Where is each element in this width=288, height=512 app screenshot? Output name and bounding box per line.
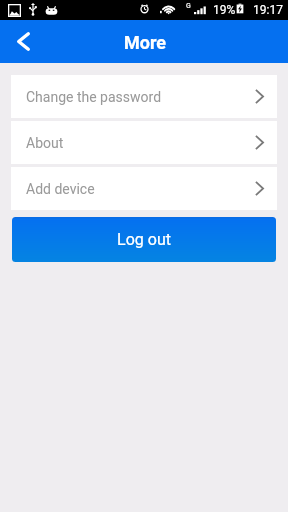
- staticText: Log out: [117, 230, 171, 249]
- staticText: Add device: [26, 181, 95, 197]
- staticText: 19:17: [253, 3, 283, 17]
- staticText: Change the password: [26, 89, 162, 105]
- button[interactable]: Change the password: [11, 75, 277, 118]
- staticText: 19%: [213, 3, 236, 17]
- button[interactable]: Back: [0, 20, 46, 63]
- button[interactable]: Log out: [12, 217, 276, 262]
- button[interactable]: About: [11, 121, 277, 164]
- button[interactable]: Add device: [11, 167, 277, 210]
- staticText: G: [186, 2, 191, 10]
- staticText: More: [124, 32, 167, 53]
- staticText: About: [26, 135, 64, 151]
